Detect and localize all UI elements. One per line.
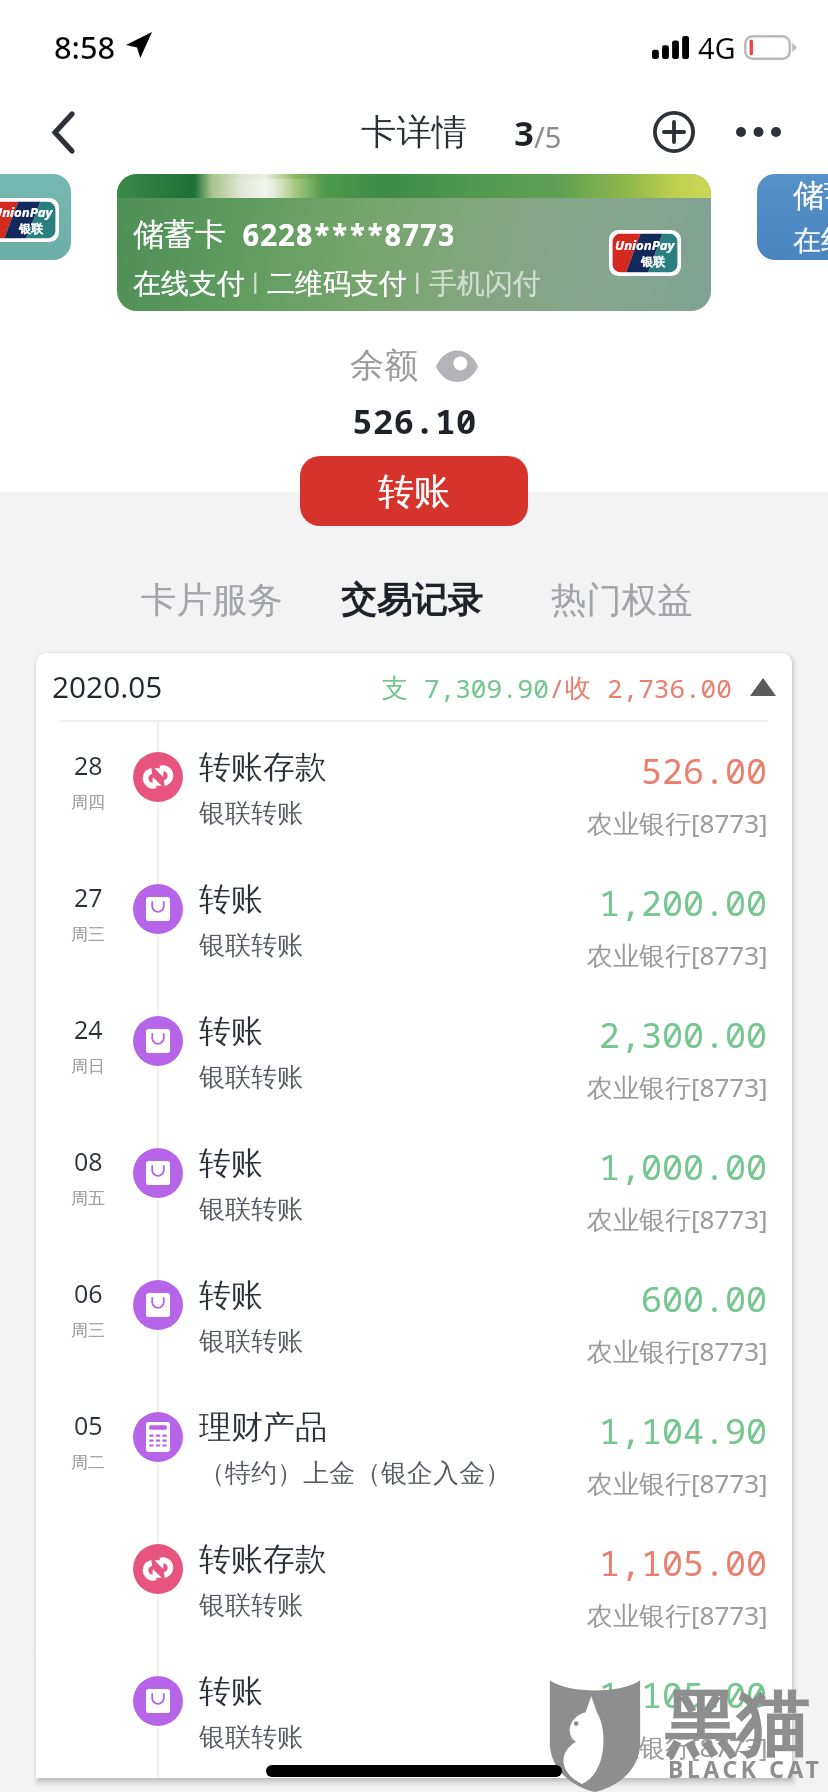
button[interactable]: UnionPay [0,174,71,260]
staticText: 卡详情 [361,110,468,155]
button[interactable]: 转账 [36,1646,792,1778]
button[interactable]: 27 [36,854,792,986]
staticText: 转账 [199,1143,263,1183]
staticText: 2,736.00 [607,670,732,705]
staticText: 3 [514,109,534,156]
staticText: 周日 [71,1056,105,1077]
button[interactable]: 储蓄 [757,174,828,260]
staticText: 农业银行[8773] [587,1465,768,1501]
staticText: 1,105.00 [599,1671,768,1719]
staticText: 农业银行[8773] [587,1201,768,1237]
staticText: 农业银行[8773] [587,805,768,841]
button[interactable]: Add card [632,90,716,174]
staticText: （特约）上金（银企入金） [199,1457,511,1490]
staticText: 6228****8773 [242,214,456,254]
staticText: 银联转账 [199,1325,303,1358]
button[interactable]: 交易记录 [340,547,484,653]
staticText: 农业银行[8773] [587,937,768,973]
staticText: 4G [698,28,736,67]
staticText: 收 [565,669,607,705]
staticText: 周四 [71,792,105,813]
staticText: 转账 [199,1275,263,1315]
button[interactable]: Back [0,90,116,174]
staticText: 05 [74,1408,103,1442]
button[interactable]: 28 [36,722,792,854]
staticText: 转账存款 [199,1539,327,1579]
staticText: 银联 [641,254,665,269]
staticText: 余额 [350,344,418,387]
staticText: 黑猫 [664,1680,808,1771]
staticText: 丨 [407,270,429,298]
button[interactable]: 转账存款 [36,1514,792,1646]
staticText: 储蓄卡 [133,215,226,254]
button[interactable]: More options [714,90,802,174]
staticText: 27 [74,880,103,914]
staticText: 1,104.90 [599,1407,768,1455]
staticText: 08 [74,1144,103,1178]
staticText: 农业银行[8773] [587,1729,768,1765]
button[interactable]: 05 [36,1382,792,1514]
staticText: 农业银行[8773] [587,1597,768,1633]
staticText: 手机闪付 [429,266,541,301]
staticText: 交易记录 [341,578,483,623]
staticText: 1,105.00 [599,1539,768,1587]
staticText: 526.00 [641,747,768,795]
staticText: 8:58 [54,26,116,68]
staticText: 转账 [199,879,263,919]
staticText: 24 [74,1012,103,1046]
staticText: 1,200.00 [599,879,768,927]
staticText: 转账 [199,1671,263,1711]
staticText: 周五 [71,1188,105,1209]
staticText: 二维码支付 [267,266,407,301]
button[interactable]: 转账 [300,456,528,526]
staticText: 银联转账 [199,929,303,962]
staticText: 银联转账 [199,1193,303,1226]
staticText: 2020.05 [52,666,163,707]
staticText: 600.00 [641,1275,768,1323]
staticText: 周二 [71,1452,105,1473]
button[interactable]: 热门权益 [538,547,706,653]
staticText: 在线支付 [133,266,245,301]
button[interactable]: 06 [36,1250,792,1382]
staticText: 热门权益 [551,578,693,623]
button[interactable]: 储蓄卡 [117,174,711,311]
staticText: UnionPay [0,203,53,221]
staticText: 银联转账 [199,1061,303,1094]
staticText: 在线 [793,223,828,258]
button[interactable]: 余额 [338,340,490,391]
staticText: 卡片服务 [141,578,283,623]
staticText: /5 [534,117,562,156]
staticText: 转账 [199,1011,263,1051]
staticText: 银联转账 [199,797,303,830]
staticText: 2,300.00 [599,1011,768,1059]
staticText: 526.10 [352,397,477,444]
staticText: 7,309.90 [424,670,549,705]
staticText: 周三 [71,924,105,945]
staticText: 1,000.00 [599,1143,768,1191]
staticText: 农业银行[8773] [587,1333,768,1369]
staticText: 丨 [245,270,267,298]
staticText: UnionPay [615,236,675,254]
staticText: 理财产品 [199,1407,327,1447]
staticText: 银联转账 [199,1589,303,1622]
staticText: 转账存款 [199,747,327,787]
staticText: 转账 [378,469,450,514]
staticText: 银联转账 [199,1721,303,1754]
button[interactable]: 卡片服务 [128,547,296,653]
staticText: 银联 [19,221,43,236]
staticText: 储蓄 [793,176,828,215]
staticText: 周三 [71,1320,105,1341]
staticText: 农业银行[8773] [587,1069,768,1105]
button[interactable]: 24 [36,986,792,1118]
staticText: 28 [74,748,103,782]
button[interactable]: 08 [36,1118,792,1250]
staticText: 支 [382,669,424,705]
staticText: / [549,670,565,705]
staticText: BLACK CAT [668,1753,823,1784]
staticText: 06 [74,1276,103,1310]
